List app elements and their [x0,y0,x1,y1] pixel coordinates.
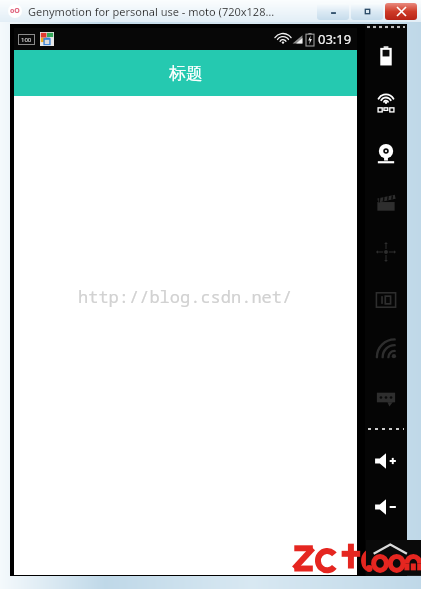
staticText: Genymotion for personal use - moto (720x… [28,4,275,19]
button[interactable]: Maximize [351,3,383,20]
staticText: http://blog.csdn.net/ [78,285,293,308]
button[interactable]: Volume up [365,438,407,484]
button[interactable]: Volume down [365,484,407,530]
staticText: 03:19 [318,30,352,48]
button[interactable]: Camera [365,128,407,178]
button[interactable]: Identifiers [365,276,407,324]
button[interactable]: Minimize [317,3,349,20]
button[interactable]: Rotate [365,228,407,276]
button[interactable]: Home [365,536,407,576]
button[interactable]: Battery [365,32,407,80]
button[interactable]: Close [385,3,417,20]
button[interactable]: Record screen [365,178,407,228]
button[interactable]: GPS [365,80,407,128]
staticText: 标题 [169,63,203,84]
staticText: oO [10,6,20,16]
button[interactable]: SMS [365,374,407,422]
button[interactable]: Network [365,324,407,374]
staticText: 100 [21,36,32,44]
